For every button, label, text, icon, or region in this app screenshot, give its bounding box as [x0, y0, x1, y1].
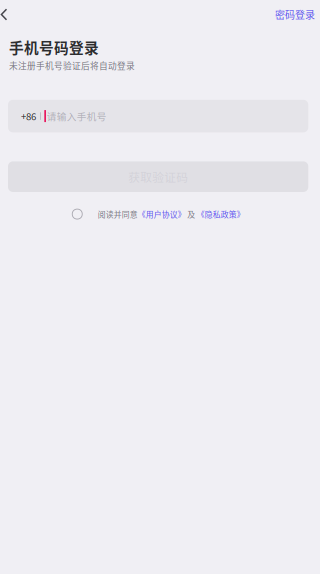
button[interactable]: 密码登录: [270, 0, 320, 29]
button[interactable]: 《隐私政策》: [197, 208, 245, 220]
button[interactable]: 《用户协议》: [138, 208, 186, 220]
staticText: 《用户协议》: [138, 208, 186, 220]
staticText: 手机号码登录: [9, 36, 99, 58]
staticText: 未注册手机号验证后将自动登录: [9, 59, 135, 72]
staticText: 密码登录: [275, 7, 315, 22]
staticText: 获取验证码: [128, 168, 188, 185]
staticText: 请输入手机号: [47, 109, 107, 123]
button[interactable]: Agree to the agreements: [72, 207, 82, 222]
staticText: 及: [187, 208, 195, 220]
button[interactable]: Back: [0, 2, 17, 26]
staticText: 《隐私政策》: [197, 208, 245, 220]
staticText: +86: [21, 109, 36, 123]
staticText: 阅读并同意: [98, 208, 138, 220]
